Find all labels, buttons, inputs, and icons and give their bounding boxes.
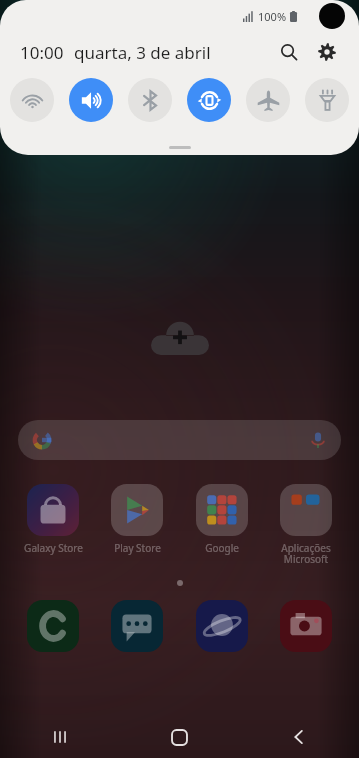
button[interactable]: Aplicações Microsoft (267, 482, 345, 566)
button[interactable]: Internet (183, 600, 261, 652)
button[interactable]: Flashlight (305, 78, 349, 122)
button[interactable]: Recents (0, 716, 119, 758)
button[interactable]: Camera (267, 600, 345, 652)
button[interactable]: Auto rotate (187, 78, 231, 122)
button[interactable]: Galaxy Store (14, 482, 92, 555)
button[interactable]: Back (239, 716, 359, 758)
button[interactable]: Google (183, 482, 261, 555)
button[interactable]: Add widget (151, 321, 209, 355)
button[interactable]: Home (119, 716, 239, 758)
staticText: Google (205, 541, 239, 555)
button[interactable] (18, 420, 341, 460)
button[interactable]: Phone (14, 600, 92, 652)
button[interactable]: Messages (98, 600, 176, 652)
button[interactable]: Settings (311, 36, 343, 68)
staticText: quarta, 3 de abril (74, 41, 211, 64)
staticText: Play Store (114, 541, 161, 555)
staticText: Galaxy Store (24, 541, 83, 555)
button[interactable]: Bluetooth (128, 78, 172, 122)
button[interactable]: Wi-Fi (10, 78, 54, 122)
staticText: Aplicações Microsoft (281, 541, 331, 566)
button[interactable]: Play Store (98, 482, 176, 555)
button[interactable]: Search (273, 36, 305, 68)
staticText: 10:00 (20, 41, 64, 64)
staticText: 100% (258, 9, 287, 24)
button[interactable]: Flight mode (246, 78, 290, 122)
button[interactable]: Sound (69, 78, 113, 122)
